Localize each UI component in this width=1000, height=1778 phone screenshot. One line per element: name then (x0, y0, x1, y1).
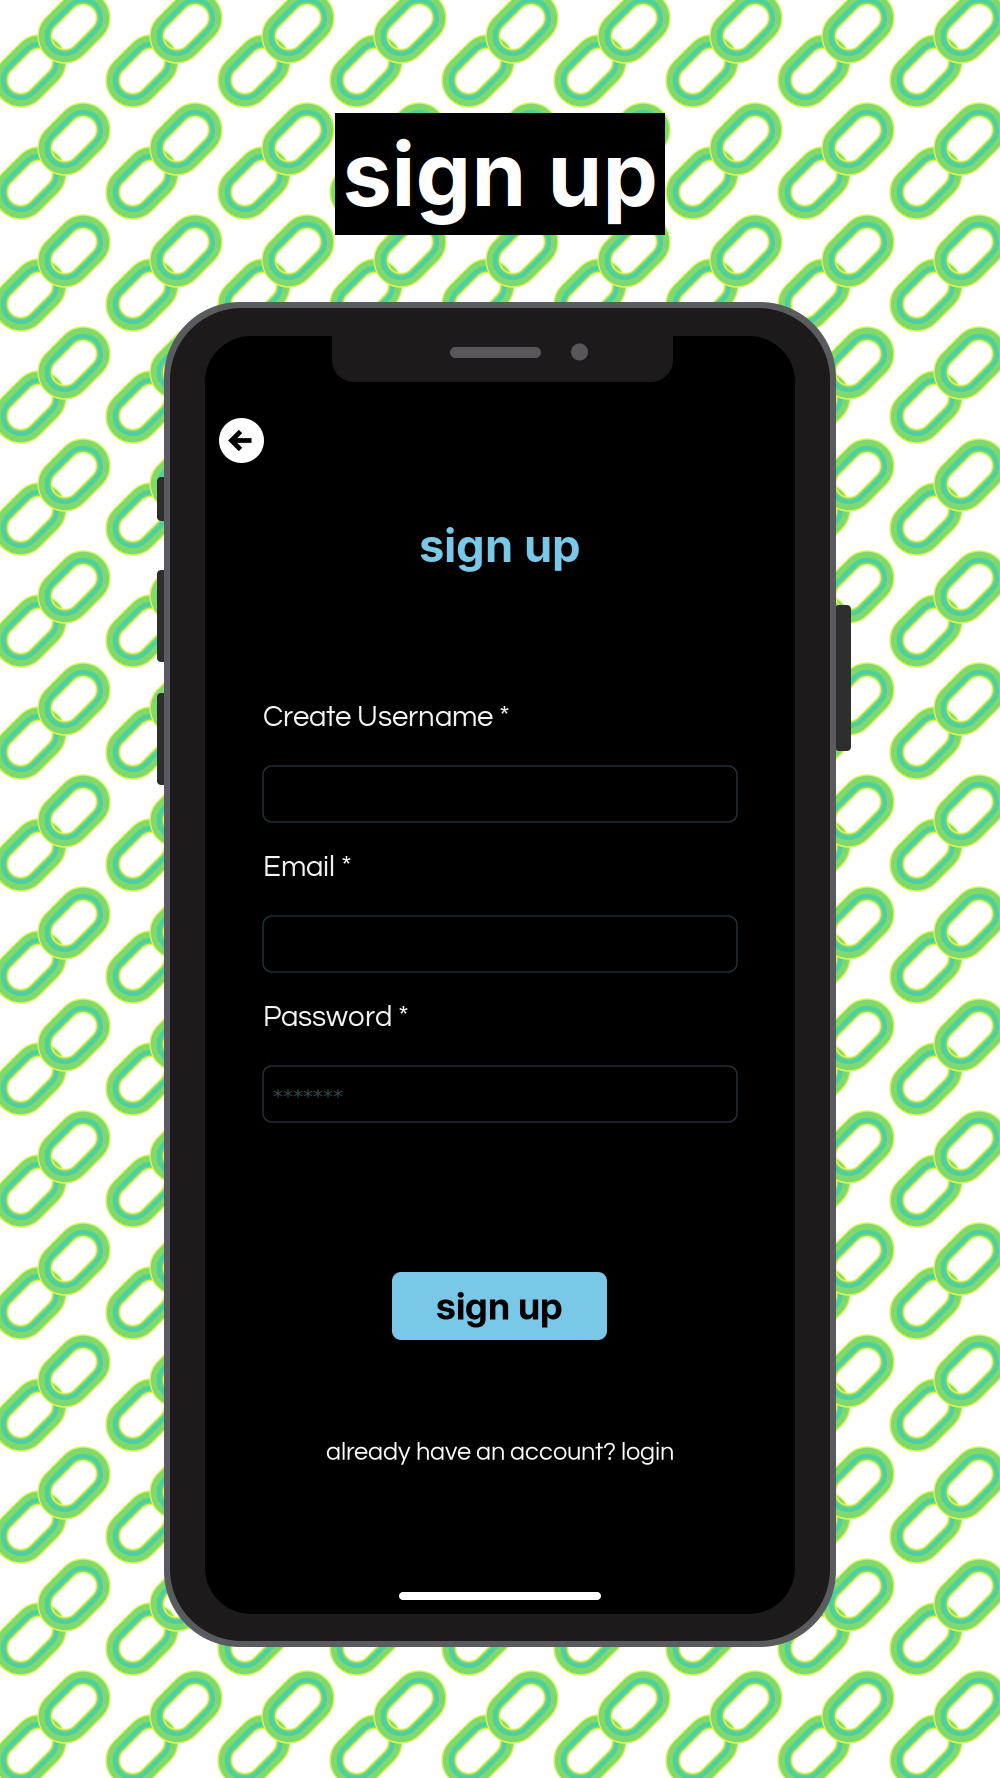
button[interactable]: sign up (392, 1272, 607, 1340)
staticText: sign up (436, 1283, 563, 1329)
staticText: already have an account? login (326, 1439, 674, 1465)
staticText: Email * (263, 852, 352, 882)
button[interactable]: Back (219, 418, 264, 463)
staticText: Create Username * (263, 702, 510, 732)
staticText: sign up (342, 121, 657, 227)
staticText: ******* (273, 1084, 343, 1108)
staticText: sign up (419, 518, 581, 573)
staticText: Password * (263, 1002, 409, 1032)
button[interactable]: already have an account? login (205, 1439, 795, 1465)
